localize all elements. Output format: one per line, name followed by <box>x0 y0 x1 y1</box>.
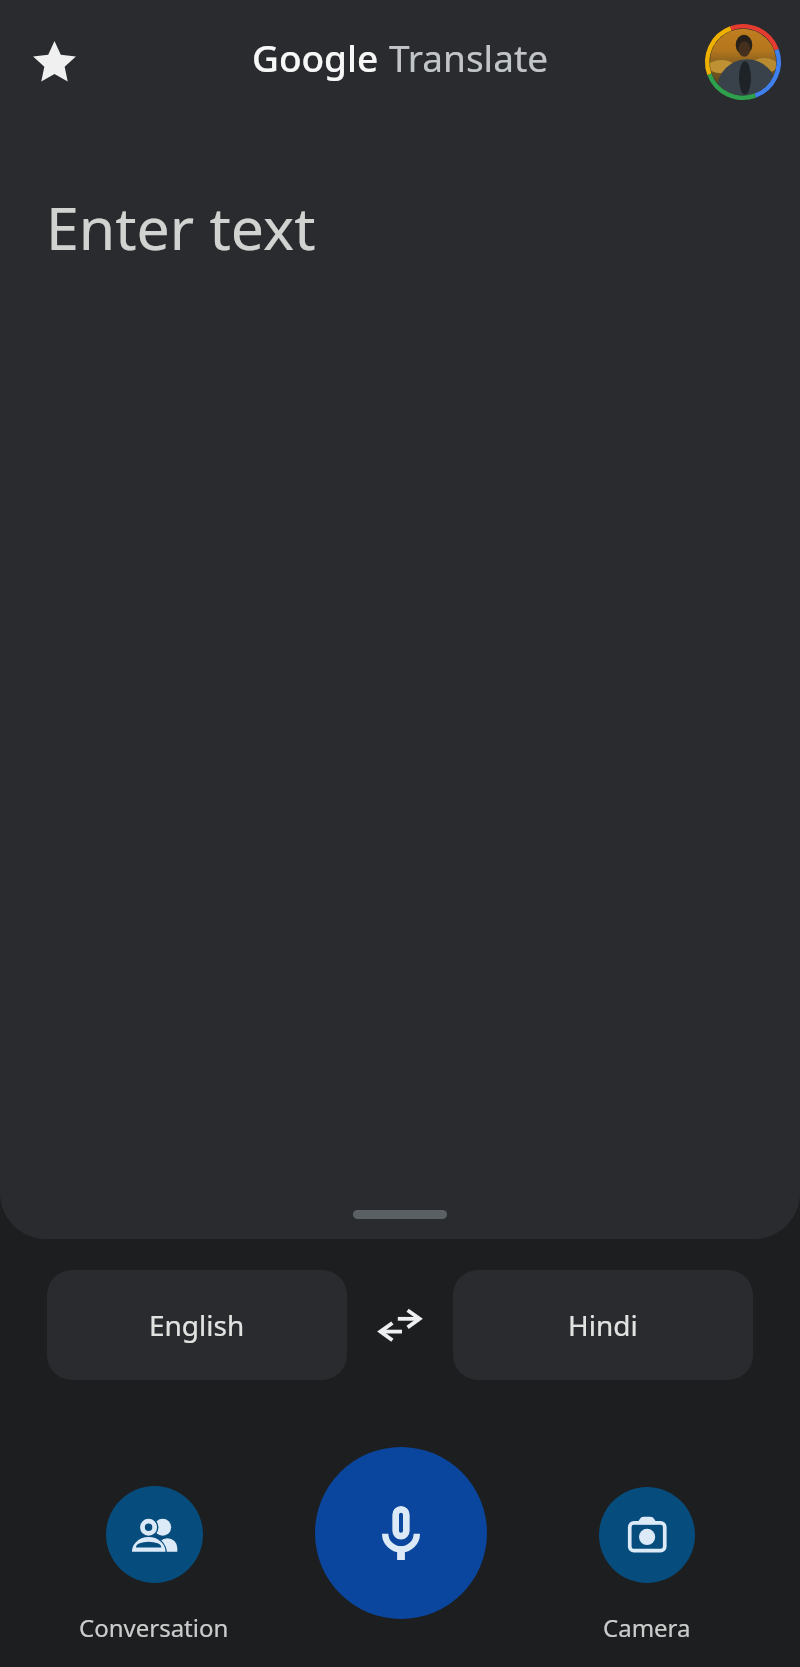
button[interactable]: English <box>47 1270 347 1380</box>
staticText: Camera <box>603 1611 691 1644</box>
button[interactable]: Hindi <box>453 1270 753 1380</box>
button[interactable]: Conversation <box>55 1486 253 1644</box>
button[interactable]: Enter text <box>0 124 800 454</box>
staticText: Google <box>252 32 379 82</box>
button[interactable]: Account profile <box>700 19 786 105</box>
staticText: Enter text <box>46 187 316 267</box>
staticText: Conversation <box>79 1611 229 1644</box>
button[interactable]: Swap languages <box>347 1270 453 1380</box>
button[interactable]: Saved translations <box>12 20 96 104</box>
staticText: Translate <box>389 32 549 82</box>
staticText: English <box>149 1306 245 1344</box>
button[interactable]: Camera <box>548 1487 746 1644</box>
staticText: Hindi <box>568 1306 638 1344</box>
button[interactable]: Speak to translate <box>315 1447 487 1619</box>
